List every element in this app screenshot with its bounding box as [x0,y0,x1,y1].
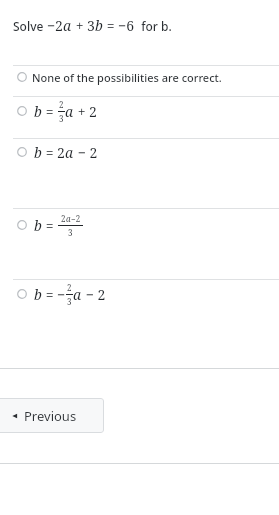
staticText: 2 [59,99,64,110]
staticText: −2 [47,16,63,35]
staticText: a [66,213,71,224]
staticText: None of the possibilities are correct. [32,70,222,85]
staticText: 2 [61,213,66,224]
staticText: b [95,16,103,35]
staticText: − 2 [82,285,106,304]
button[interactable]: b [0,137,279,167]
button[interactable]: Previous [0,398,104,433]
staticText: b [34,143,42,162]
staticText: Solve [13,18,47,34]
staticText: = −6 [103,16,135,35]
staticText: = [42,216,58,235]
staticText: −2 [71,213,81,224]
staticText: 3 [68,227,73,238]
button[interactable]: None of the possibilities are correct. [0,64,279,90]
staticText: 3 [67,296,72,307]
staticText: = − [42,285,66,304]
staticText: b [34,102,42,121]
staticText: Previous [24,407,77,425]
staticText: b [34,216,42,235]
staticText: = [42,102,58,121]
staticText: for b. [135,18,172,34]
staticText: a [65,102,74,121]
staticText: a [65,143,74,162]
staticText: − 2 [74,143,98,162]
staticText: b [34,285,42,304]
staticText: a [73,285,82,304]
button[interactable]: b [0,95,279,127]
staticText: a [63,16,72,35]
button[interactable]: b [0,207,279,243]
button[interactable]: b [0,278,279,310]
staticText: 3 [59,113,64,124]
staticText: + 3 [72,16,95,35]
staticText: + 2 [74,102,97,121]
staticText: 2 [67,282,72,293]
staticText: = 2 [42,143,65,162]
